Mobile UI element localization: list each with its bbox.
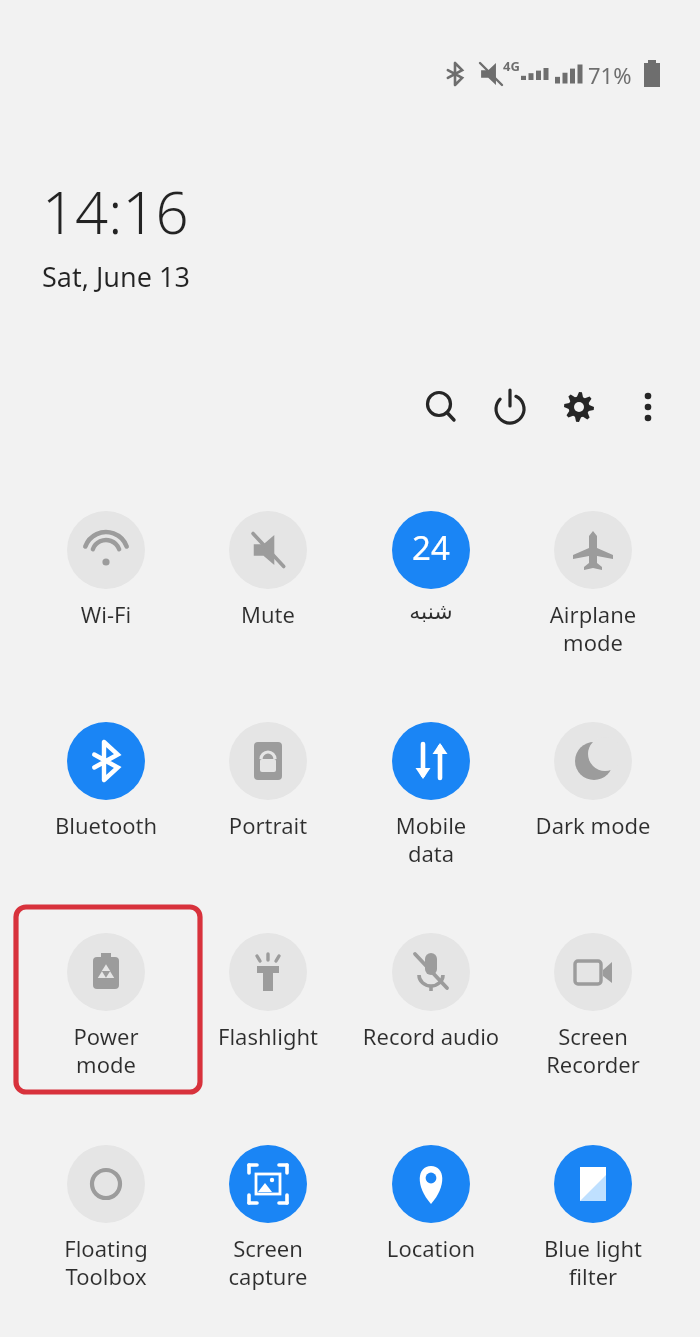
staticText: Mute [187, 599, 349, 799]
button[interactable]: Calendar 24 [350, 503, 512, 703]
button[interactable]: Screen Recorder [512, 925, 674, 1125]
button[interactable]: Location [350, 1137, 512, 1337]
staticText: Airplane mode [512, 599, 674, 799]
staticText: Wi-Fi [25, 599, 187, 799]
button[interactable]: Floating Toolbox [25, 1137, 187, 1337]
button[interactable]: Blue light filter [512, 1137, 674, 1337]
button[interactable]: Bluetooth [25, 714, 187, 914]
staticText: Screen capture [187, 1233, 349, 1337]
staticText: 71% [588, 60, 632, 90]
button[interactable]: Portrait [187, 714, 349, 914]
staticText: Sat, June 13 [42, 258, 190, 295]
staticText: Bluetooth [25, 810, 187, 1010]
button[interactable]: Record audio [350, 925, 512, 1125]
staticText: Blue light filter [512, 1233, 674, 1337]
button[interactable]: Flashlight [187, 925, 349, 1125]
button[interactable]: Dark mode [512, 714, 674, 914]
button[interactable]: Mobile data [350, 714, 512, 914]
button[interactable]: Power mode [25, 925, 187, 1125]
button[interactable]: Mute [187, 503, 349, 703]
button[interactable]: More options [622, 381, 674, 433]
staticText: Power mode [25, 1021, 187, 1221]
button[interactable]: Power [484, 381, 536, 433]
staticText: 4G [503, 57, 520, 75]
button[interactable]: Wi-Fi [25, 503, 187, 703]
staticText: Portrait [187, 810, 349, 1010]
staticText: Dark mode [512, 810, 674, 1010]
button[interactable]: Search [415, 381, 467, 433]
staticText: Mobile data [350, 810, 512, 1010]
staticText: Location [350, 1233, 512, 1337]
button[interactable]: Airplane mode [512, 503, 674, 703]
staticText: Flashlight [187, 1021, 349, 1221]
button[interactable]: Settings [553, 381, 605, 433]
staticText: Floating Toolbox [25, 1233, 187, 1337]
staticText: 14:16 [42, 172, 189, 251]
staticText: Record audio [350, 1021, 512, 1221]
staticText: 24 [412, 525, 450, 570]
button[interactable]: Screen capture [187, 1137, 349, 1337]
staticText: Screen Recorder [512, 1021, 674, 1221]
staticText: شنبه [350, 599, 512, 799]
